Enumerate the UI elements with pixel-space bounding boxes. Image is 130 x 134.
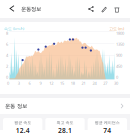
staticText: 9	[39, 81, 41, 86]
staticText: 12	[49, 81, 53, 86]
staticText: 0	[6, 75, 8, 80]
staticText: 18	[71, 81, 75, 86]
staticText: 28.1	[58, 126, 72, 134]
staticText: 3	[18, 81, 20, 86]
staticText: 1350	[116, 42, 124, 47]
staticText: 속도 (km/h)	[4, 26, 24, 31]
staticText: 12.4	[16, 126, 30, 134]
button[interactable]: 평균 케이던스	[88, 118, 127, 134]
staticText: 운동정보	[21, 6, 41, 12]
staticText: 2	[6, 64, 8, 69]
button[interactable]: 평균 속도	[3, 118, 42, 134]
button[interactable]: 운동 정보	[0, 98, 130, 114]
staticText: 450	[116, 64, 122, 69]
staticText: 6	[29, 81, 31, 86]
staticText: 27	[103, 81, 107, 86]
staticText: 최고 속도	[56, 120, 73, 125]
staticText: 6	[6, 42, 8, 47]
button[interactable]: 최고 속도	[45, 118, 85, 134]
staticText: 8	[6, 31, 8, 36]
staticText: 운동 정보	[5, 103, 27, 109]
staticText: 0	[7, 81, 9, 86]
staticText: 0	[116, 75, 118, 80]
staticText: 1800	[116, 31, 124, 36]
button[interactable]: Back	[6, 2, 19, 15]
button[interactable]: Share	[84, 5, 97, 13]
staticText: 900	[116, 53, 122, 58]
staticText: 평균 케이던스	[95, 120, 120, 125]
button[interactable]: Edit	[97, 5, 110, 13]
button[interactable]: Delete	[110, 5, 123, 13]
staticText: 24	[92, 81, 96, 86]
staticText: 74	[103, 126, 111, 134]
staticText: 30	[114, 81, 118, 86]
staticText: 21	[82, 81, 86, 86]
staticText: 4	[6, 53, 8, 58]
staticText: 15	[60, 81, 64, 86]
staticText: 고도 (m)	[109, 26, 124, 31]
staticText: 평균 속도	[14, 120, 31, 125]
